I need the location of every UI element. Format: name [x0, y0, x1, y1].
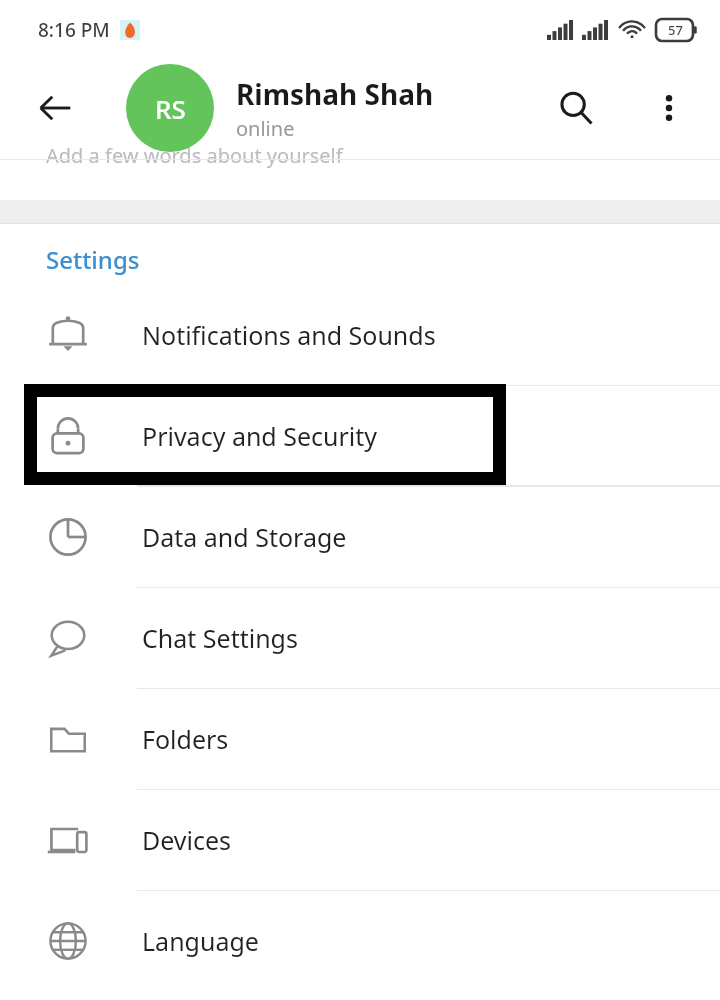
staticText: Data and Storage: [142, 520, 347, 554]
staticText: Chat Settings: [142, 621, 298, 655]
staticText: RS: [155, 91, 186, 126]
button[interactable]: Search: [543, 75, 609, 141]
button[interactable]: Privacy and Security: [0, 385, 720, 486]
staticText: Devices: [142, 823, 232, 857]
staticText: online: [236, 115, 295, 142]
button[interactable]: Back: [22, 75, 88, 141]
button[interactable]: Data and Storage: [0, 486, 720, 587]
staticText: 8:16 PM: [38, 17, 110, 43]
staticText: Settings: [46, 243, 140, 276]
staticText: Rimshah Shah: [236, 75, 434, 113]
staticText: 57: [668, 21, 683, 39]
button[interactable]: Language: [0, 890, 720, 991]
staticText: Privacy and Security: [142, 419, 378, 453]
staticText: Language: [142, 924, 259, 958]
staticText: Folders: [142, 722, 229, 756]
button[interactable]: Devices: [0, 789, 720, 890]
button[interactable]: More options: [638, 77, 700, 139]
button[interactable]: RS: [126, 64, 214, 152]
staticText: Add a few words about yourself: [46, 142, 343, 169]
button[interactable]: Chat Settings: [0, 587, 720, 688]
staticText: Notifications and Sounds: [142, 318, 436, 352]
button[interactable]: Folders: [0, 688, 720, 789]
button[interactable]: Notifications and Sounds: [0, 284, 720, 385]
